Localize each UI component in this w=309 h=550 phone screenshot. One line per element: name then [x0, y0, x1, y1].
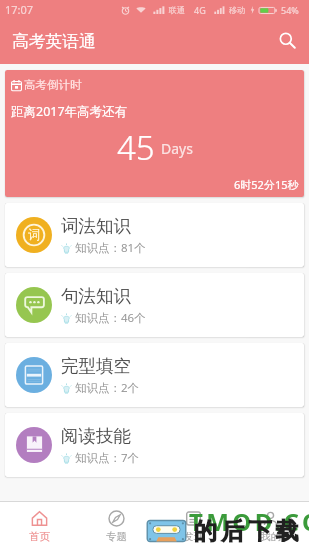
staticText: 词 — [28, 227, 41, 243]
button[interactable]: 发现 — [155, 502, 232, 550]
staticText: 我的 — [260, 530, 281, 543]
staticText: 45 — [117, 125, 155, 170]
staticText: 知识点：81个 — [75, 240, 146, 256]
staticText: 完型填空 — [61, 355, 131, 377]
button[interactable]: 首页 — [0, 502, 78, 550]
staticText: 知识点：2个 — [75, 380, 140, 396]
button[interactable]: 词 — [5, 203, 304, 267]
button[interactable]: 阅读技能 — [5, 413, 304, 477]
staticText: 联通 — [169, 5, 185, 15]
button[interactable]: 专题 — [78, 502, 155, 550]
staticText: 6时52分15秒 — [234, 177, 299, 192]
staticText: 阅读技能 — [61, 425, 131, 447]
staticText: 词法知识 — [61, 215, 131, 237]
button[interactable]: 完型填空 — [5, 343, 304, 407]
staticText: 首页 — [29, 530, 50, 543]
staticText: 高考英语通 — [12, 31, 96, 52]
staticText: 发现 — [183, 530, 204, 543]
staticText: Days — [161, 139, 193, 158]
staticText: 54% — [281, 4, 299, 16]
staticText: 高考倒计时 — [24, 78, 82, 92]
staticText: 知识点：7个 — [75, 450, 140, 466]
button[interactable]: Search — [271, 24, 303, 56]
staticText: 的后下载 — [194, 517, 303, 546]
staticText: 移动 — [229, 5, 245, 15]
staticText: 句法知识 — [61, 285, 131, 307]
staticText: 17:07 — [5, 2, 34, 17]
button[interactable]: 句法知识 — [5, 273, 304, 337]
staticText: TMOD.COM — [189, 505, 309, 538]
staticText: 距离2017年高考还有 — [11, 103, 128, 120]
button[interactable]: 我的 — [232, 502, 309, 550]
staticText: 专题 — [106, 530, 127, 543]
staticText: 知识点：46个 — [75, 310, 146, 326]
staticText: 4G — [194, 4, 206, 16]
button[interactable]: 高考倒计时 — [5, 70, 304, 197]
